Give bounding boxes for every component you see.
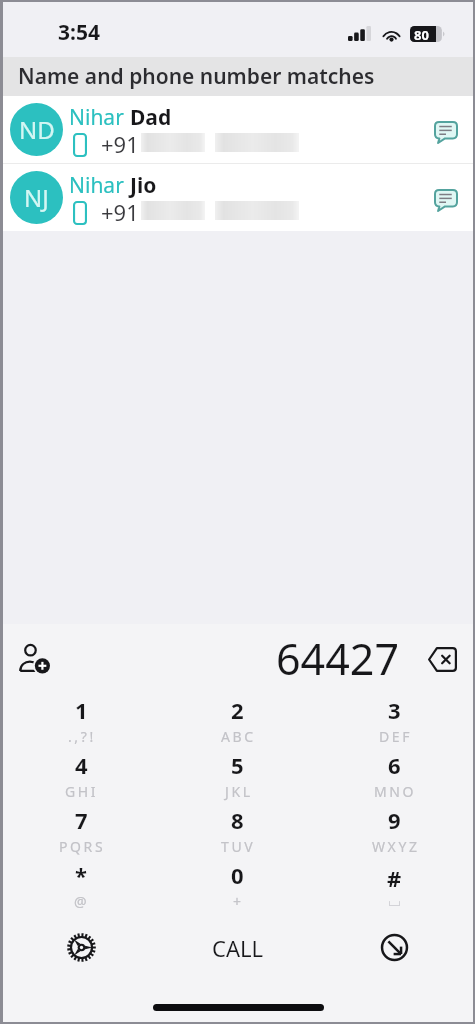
button[interactable]: 7 — [3, 803, 159, 858]
button[interactable]: 3 — [316, 693, 473, 748]
button[interactable]: NJ — [3, 164, 473, 231]
staticText: 9 — [388, 805, 401, 835]
button[interactable]: Hide keypad — [316, 916, 473, 979]
button[interactable]: 4 — [3, 748, 159, 803]
staticText: +91 — [101, 197, 139, 227]
staticText: GHI — [65, 782, 99, 801]
staticText: 80 — [414, 26, 429, 42]
button[interactable]: Backspace — [414, 631, 470, 687]
staticText: @ — [74, 892, 90, 911]
staticText: PQRS — [59, 837, 106, 856]
button[interactable]: 5 — [159, 748, 316, 803]
staticText: 3 — [388, 695, 401, 725]
staticText: 7 — [75, 805, 88, 835]
button[interactable]: 2 — [159, 693, 316, 748]
button[interactable]: * — [3, 858, 159, 913]
staticText: + — [233, 892, 244, 911]
staticText: JKL — [225, 782, 253, 801]
button[interactable]: 6 — [316, 748, 473, 803]
staticText: Jio — [130, 171, 157, 200]
staticText: 4 — [75, 750, 88, 780]
staticText: ND — [19, 113, 55, 146]
button[interactable]: 1 — [3, 693, 159, 748]
staticText: # — [387, 863, 402, 893]
button[interactable]: 0 — [159, 858, 316, 913]
staticText: 0 — [231, 860, 244, 890]
staticText: Nihar — [69, 103, 130, 132]
button[interactable]: Settings — [3, 916, 159, 979]
staticText: 3:54 — [58, 18, 100, 47]
staticText: 64427 — [276, 629, 399, 688]
staticText: 6 — [388, 750, 401, 780]
staticText: MNO — [374, 782, 417, 801]
staticText: WXYZ — [372, 837, 420, 856]
button[interactable]: # — [316, 858, 473, 913]
staticText: NJ — [24, 181, 49, 214]
staticText: ABC — [221, 727, 256, 746]
staticText: 8 — [231, 805, 244, 835]
button[interactable]: 9 — [316, 803, 473, 858]
button[interactable]: CALL — [159, 916, 316, 979]
staticText: TUV — [221, 837, 256, 856]
staticText: 2 — [231, 695, 244, 725]
staticText: * — [75, 860, 87, 890]
button[interactable]: 8 — [159, 803, 316, 858]
staticText: 1 — [75, 695, 88, 725]
staticText: Nihar — [69, 171, 130, 200]
button[interactable]: ND — [3, 96, 473, 163]
staticText: 5 — [231, 750, 244, 780]
staticText: Name and phone number matches — [18, 62, 375, 91]
staticText: .,?! — [68, 727, 96, 746]
staticText: +91 — [101, 129, 139, 159]
staticText: DEF — [379, 727, 413, 746]
staticText: ⌴ — [389, 895, 403, 909]
button[interactable]: Add contact — [3, 627, 65, 689]
button[interactable]: Message — [423, 110, 468, 155]
staticText: CALL — [212, 933, 264, 963]
staticText: Dad — [130, 103, 172, 132]
button[interactable]: Message — [423, 178, 468, 223]
